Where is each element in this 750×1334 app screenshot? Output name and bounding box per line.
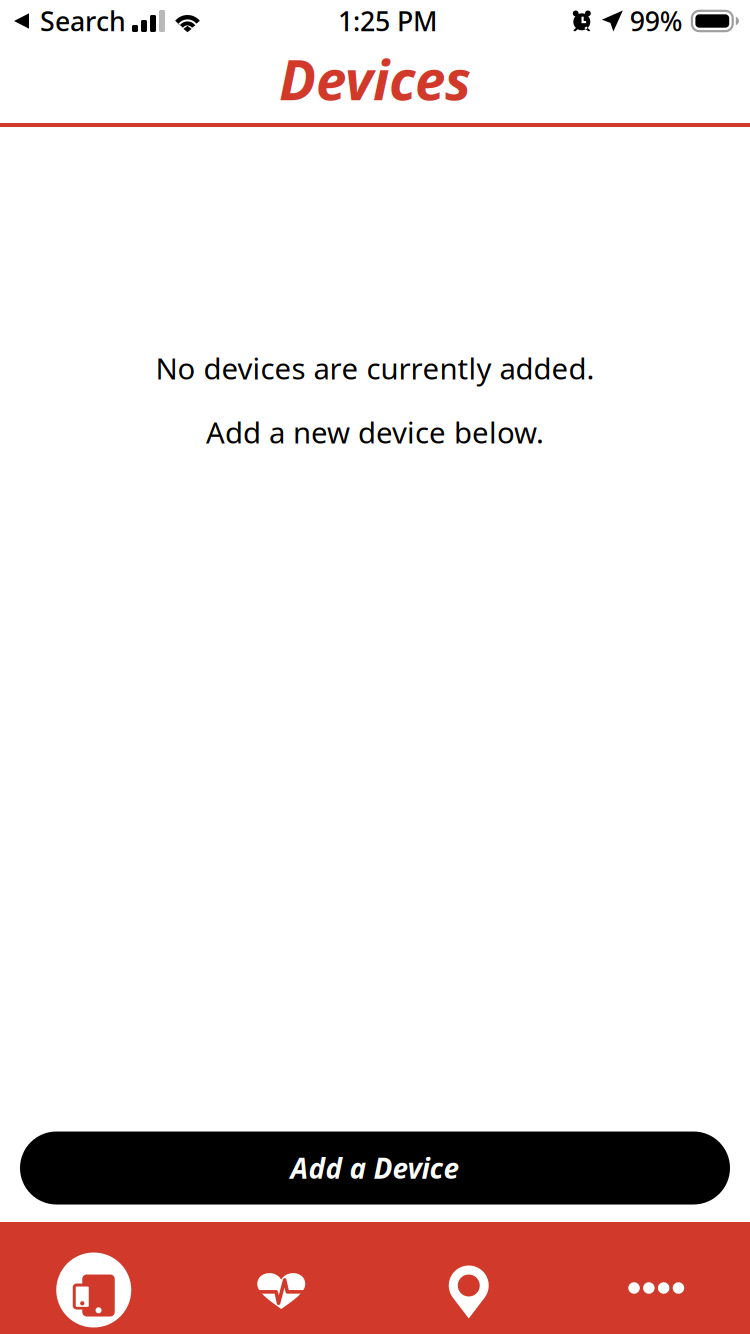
- staticText: Search: [40, 3, 126, 39]
- button[interactable]: Health: [187, 1234, 375, 1334]
- staticText: Add a new device below.: [206, 412, 544, 451]
- staticText: No devices are currently added.: [155, 348, 594, 387]
- staticText: 1:25 PM: [338, 3, 437, 39]
- button[interactable]: Add a Device: [20, 1131, 730, 1204]
- staticText: Devices: [279, 43, 471, 115]
- button[interactable]: Location: [375, 1236, 562, 1334]
- button[interactable]: Devices: [0, 1234, 187, 1334]
- staticText: 99%: [630, 3, 683, 39]
- button[interactable]: More: [562, 1232, 750, 1334]
- staticText: Add a Device: [290, 1149, 459, 1187]
